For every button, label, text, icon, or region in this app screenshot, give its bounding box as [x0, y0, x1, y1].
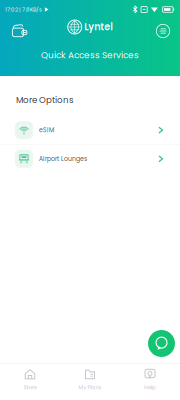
- button[interactable]: Chat support: [148, 330, 175, 357]
- staticText: eSIM: [39, 126, 54, 134]
- button[interactable]: Wallet: [6, 19, 30, 43]
- button[interactable]: Help: [120, 364, 180, 400]
- button[interactable]: My Plans: [60, 364, 120, 400]
- staticText: Airport Lounges: [39, 154, 87, 163]
- button[interactable]: Airport Lounges: [0, 145, 180, 173]
- staticText: More Options: [16, 94, 74, 106]
- button[interactable]: Menu: [151, 19, 175, 43]
- button[interactable]: eSIM: [0, 116, 180, 144]
- staticText: Store: [23, 383, 36, 391]
- button[interactable]: Store: [0, 364, 60, 400]
- staticText: My Plans: [78, 383, 101, 391]
- staticText: 17:02 | 7.8KB/s: [5, 6, 42, 13]
- staticText: Quick Access Services: [41, 49, 139, 61]
- staticText: Lyntel: [84, 20, 113, 34]
- staticText: Help: [144, 383, 156, 391]
